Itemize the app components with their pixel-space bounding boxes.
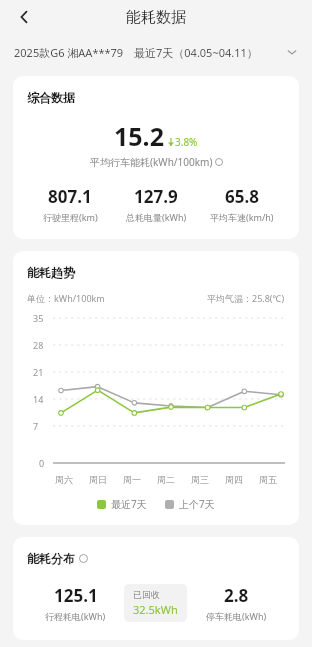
staticText: 平均车速(km/h) [210,211,274,223]
staticText: 最近7天（04.05~04.11） [134,45,258,60]
staticText: 最近7天 [111,497,147,511]
staticText: 已回收 [133,589,160,600]
staticText: 2.8 [224,584,249,607]
button[interactable]: 2025款G6 湘AA***79 [0,34,312,70]
staticText: 2025款G6 湘AA***79 [14,45,124,60]
staticText: 上个7天 [179,497,215,511]
button[interactable]: Back [8,1,40,33]
staticText: 平均气温：25.8(℃) [207,292,285,304]
staticText: 15.2 [114,119,164,153]
staticText: 周五 [259,474,277,485]
staticText: 周一 [123,474,141,485]
staticText: 周日 [89,474,107,485]
staticText: 综合数据 [27,90,75,105]
staticText: 807.1 [48,185,92,208]
staticText: 28 [33,339,44,351]
staticText: 35 [33,312,44,324]
staticText: 14 [33,393,44,405]
staticText: 单位：kWh/100km [27,292,105,304]
staticText: 125.1 [54,584,98,607]
staticText: 能耗分布 [27,551,75,566]
staticText: 能耗趋势 [27,265,75,280]
staticText: 65.8 [225,185,259,208]
staticText: 行驶里程(km) [43,211,98,223]
staticText: 周四 [225,474,243,485]
staticText: 停车耗电(kWh) [206,610,267,622]
staticText: 行程耗电(kWh) [45,610,106,622]
staticText: 3.8% [175,135,198,149]
staticText: 总耗电量(kWh) [126,211,187,223]
staticText: 周二 [157,474,175,485]
staticText: 平均行车能耗(kWh/100km) [90,155,213,169]
staticText: 周六 [55,474,73,485]
staticText: 32.5kWh [133,602,178,617]
staticText: 能耗数据 [126,8,186,27]
staticText: 127.9 [134,185,178,208]
staticText: 7 [33,420,39,432]
staticText: 21 [33,366,44,378]
staticText: 0 [39,457,45,469]
staticText: 周三 [191,474,209,485]
